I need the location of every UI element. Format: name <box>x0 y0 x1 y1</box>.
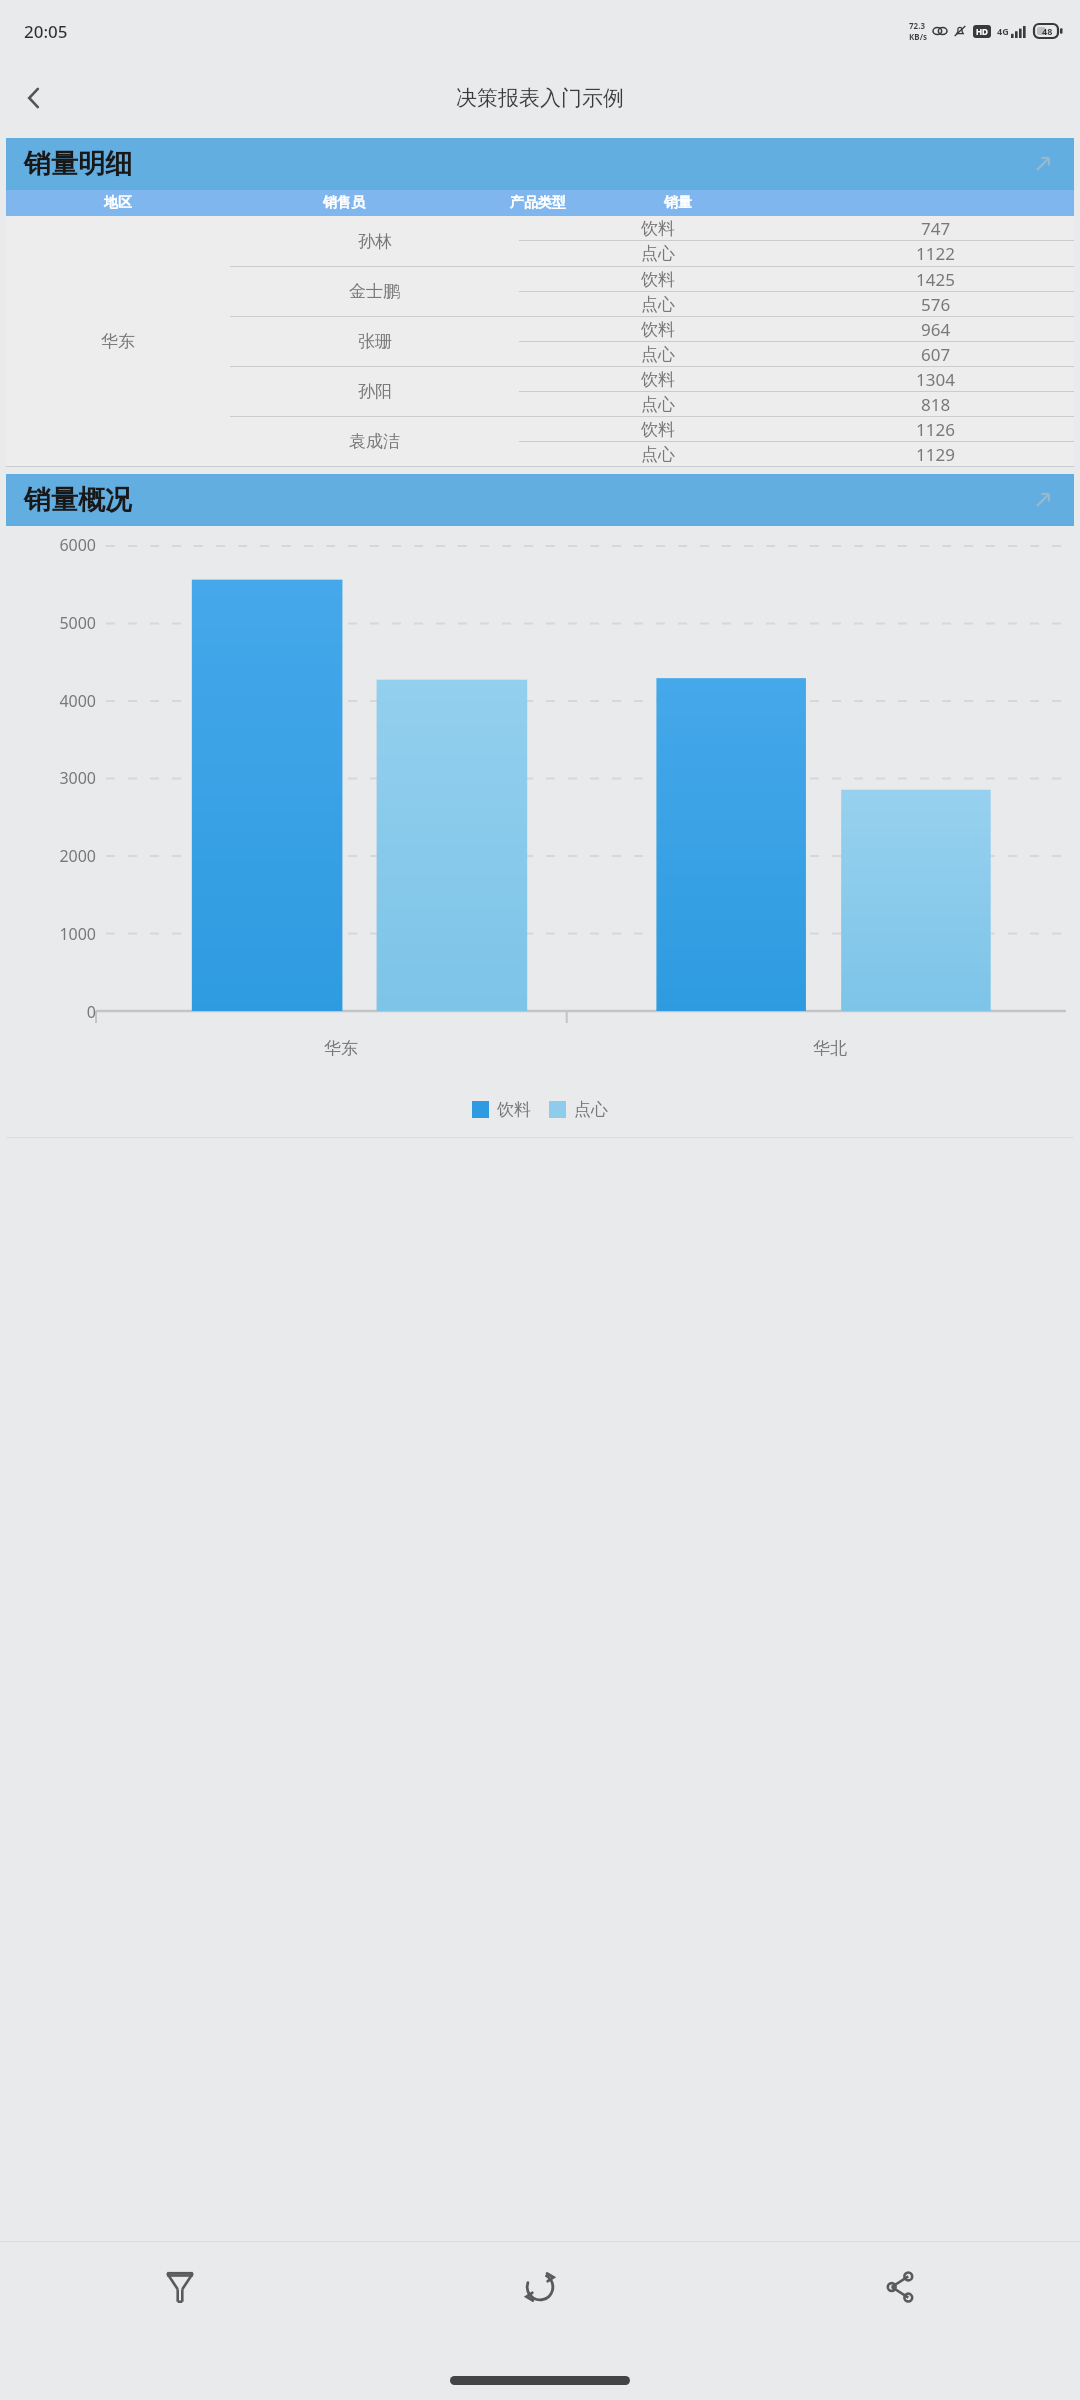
staticText: 20:05 <box>24 20 68 43</box>
button[interactable]: Expand <box>1024 481 1062 519</box>
staticText: 销量明细 <box>24 147 132 181</box>
staticText: 964 <box>921 318 951 341</box>
staticText: 饮料 <box>641 419 675 440</box>
staticText: 销量概况 <box>24 483 132 517</box>
staticText: HD <box>976 26 988 37</box>
staticText: 点心 <box>641 394 675 415</box>
staticText: 576 <box>921 293 951 316</box>
staticText: 饮料 <box>641 319 675 340</box>
staticText: 1122 <box>916 242 955 265</box>
staticText: 点心 <box>641 294 675 315</box>
staticText: 48 <box>1042 25 1053 37</box>
staticText: 607 <box>921 343 951 366</box>
staticText: 决策报表入门示例 <box>456 85 624 111</box>
staticText: 饮料 <box>641 269 675 290</box>
staticText: 金士鹏 <box>349 281 400 302</box>
staticText: 747 <box>921 217 951 240</box>
staticText: 华东 <box>101 331 135 352</box>
staticText: 2000 <box>59 845 96 867</box>
button[interactable]: Share <box>720 2242 1080 2360</box>
staticText: 4000 <box>59 690 96 712</box>
staticText: 华北 <box>813 1038 847 1059</box>
button[interactable]: Filter <box>0 2242 360 2360</box>
staticText: 5000 <box>59 612 96 634</box>
staticText: 1129 <box>916 443 955 466</box>
staticText: 饮料 <box>641 218 675 239</box>
staticText: 72.3 <box>909 20 925 31</box>
staticText: 1304 <box>916 368 955 391</box>
staticText: 地区 <box>104 194 132 212</box>
staticText: 点心 <box>641 243 675 264</box>
staticText: 点心 <box>641 444 675 465</box>
staticText: 孙阳 <box>358 381 392 402</box>
staticText: 饮料 <box>497 1099 531 1120</box>
button[interactable]: 销量明细 <box>6 138 1074 190</box>
staticText: 产品类型 <box>510 194 566 212</box>
button[interactable]: Refresh <box>360 2242 720 2360</box>
staticText: KB/s <box>909 31 927 42</box>
staticText: 0 <box>86 1001 96 1023</box>
button[interactable]: 销量概况 <box>6 474 1074 526</box>
staticText: 张珊 <box>358 331 392 352</box>
staticText: 华东 <box>324 1038 358 1059</box>
button[interactable]: Expand <box>1024 145 1062 183</box>
staticText: 孙林 <box>358 231 392 252</box>
staticText: 点心 <box>574 1099 608 1120</box>
staticText: 4G <box>997 25 1009 37</box>
staticText: 3000 <box>59 767 96 789</box>
staticText: 饮料 <box>641 369 675 390</box>
staticText: 6000 <box>59 534 96 556</box>
staticText: 1425 <box>916 268 955 291</box>
staticText: 818 <box>921 393 951 416</box>
staticText: 销售员 <box>323 194 365 212</box>
staticText: 点心 <box>641 344 675 365</box>
button[interactable]: Back <box>8 72 60 124</box>
staticText: 1000 <box>59 923 96 945</box>
staticText: 销量 <box>664 194 692 212</box>
staticText: 1126 <box>916 418 955 441</box>
staticText: 袁成洁 <box>349 431 400 452</box>
